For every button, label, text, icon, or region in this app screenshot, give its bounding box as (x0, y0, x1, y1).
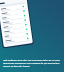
staticText: Get notified and stay on schedule with a… (3, 58, 61, 67)
